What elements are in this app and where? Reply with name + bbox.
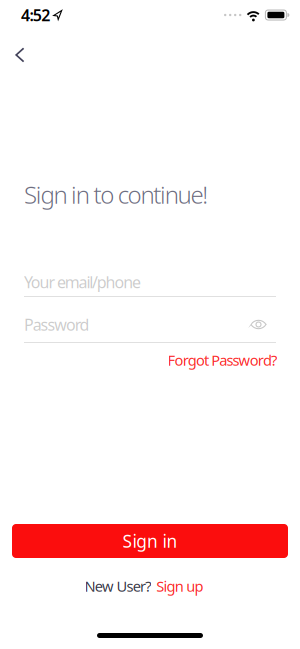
button[interactable]: Sign up: [156, 576, 203, 596]
staticText: Password: [24, 314, 90, 335]
staticText: 4:52: [21, 4, 50, 26]
staticText: Sign up: [156, 576, 203, 596]
staticText: Sign in: [123, 529, 177, 552]
button[interactable]: Sign in: [12, 524, 288, 558]
staticText: New User?: [85, 576, 151, 596]
button[interactable]: Forgot Password?: [167, 350, 277, 370]
staticText: Forgot Password?: [167, 350, 277, 370]
staticText: Your email/phone: [24, 271, 141, 293]
button[interactable]: Show password: [251, 319, 276, 329]
staticText: Sign in to continue!: [24, 179, 208, 210]
button[interactable]: Back: [0, 40, 37, 70]
